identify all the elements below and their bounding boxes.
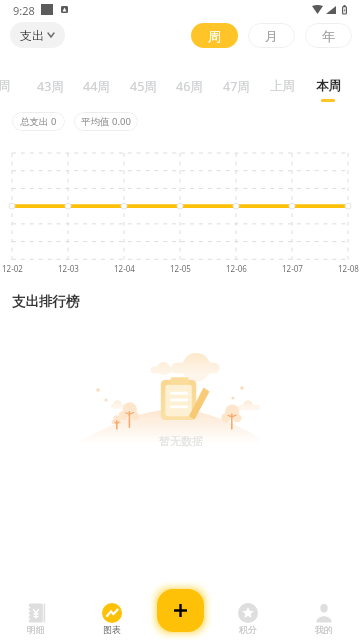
staticText: 9:28 — [13, 3, 35, 18]
button[interactable]: 本周 — [305, 74, 351, 106]
button[interactable]: 积分 — [218, 598, 278, 638]
staticText: 12-05 — [170, 263, 191, 274]
staticText: 支出 — [20, 28, 44, 43]
staticText: 总支出 0 — [20, 115, 57, 128]
staticText: 暂无数据 — [159, 434, 203, 448]
button[interactable]: 月 — [248, 23, 295, 48]
staticText: 月 — [265, 28, 278, 44]
button[interactable]: 43周 — [27, 74, 73, 106]
staticText: 平均值 0.00 — [81, 115, 131, 128]
button[interactable]: 47周 — [213, 74, 259, 106]
staticText: 12-07 — [282, 263, 303, 274]
button[interactable]: 44周 — [73, 74, 119, 106]
button[interactable]: 总支出 0 — [12, 112, 65, 131]
staticText: 积分 — [239, 624, 257, 635]
staticText: 本周 — [316, 78, 341, 94]
button[interactable]: 上周 — [259, 74, 305, 106]
staticText: 12-03 — [58, 263, 79, 274]
staticText: 44周 — [83, 78, 110, 95]
button[interactable]: 我的 — [294, 598, 354, 638]
staticText: 明细 — [27, 624, 45, 635]
staticText: 周 — [0, 78, 11, 94]
button[interactable]: Add record — [157, 589, 204, 632]
staticText: 周 — [208, 28, 221, 44]
staticText: 图表 — [103, 624, 121, 635]
button[interactable]: 年 — [305, 23, 352, 48]
button[interactable]: 周 — [0, 74, 27, 106]
button[interactable]: 明细 — [6, 598, 66, 638]
staticText: 12-08 — [338, 263, 359, 274]
staticText: 上周 — [270, 78, 295, 94]
button[interactable]: 46周 — [166, 74, 212, 106]
staticText: 年 — [322, 28, 335, 44]
button[interactable]: 周 — [191, 23, 238, 48]
staticText: 12-06 — [226, 263, 247, 274]
staticText: 12-04 — [114, 263, 135, 274]
staticText: 我的 — [315, 624, 333, 635]
staticText: 43周 — [37, 78, 64, 95]
staticText: 47周 — [223, 78, 250, 95]
staticText: 46周 — [176, 78, 203, 95]
button[interactable]: 图表 — [82, 598, 142, 638]
button[interactable]: 平均值 0.00 — [74, 112, 138, 131]
staticText: 12-02 — [2, 263, 23, 274]
staticText: 45周 — [130, 78, 157, 95]
button[interactable]: 支出 — [10, 22, 65, 48]
staticText: 支出排行榜 — [12, 293, 80, 310]
button[interactable]: 45周 — [120, 74, 166, 106]
